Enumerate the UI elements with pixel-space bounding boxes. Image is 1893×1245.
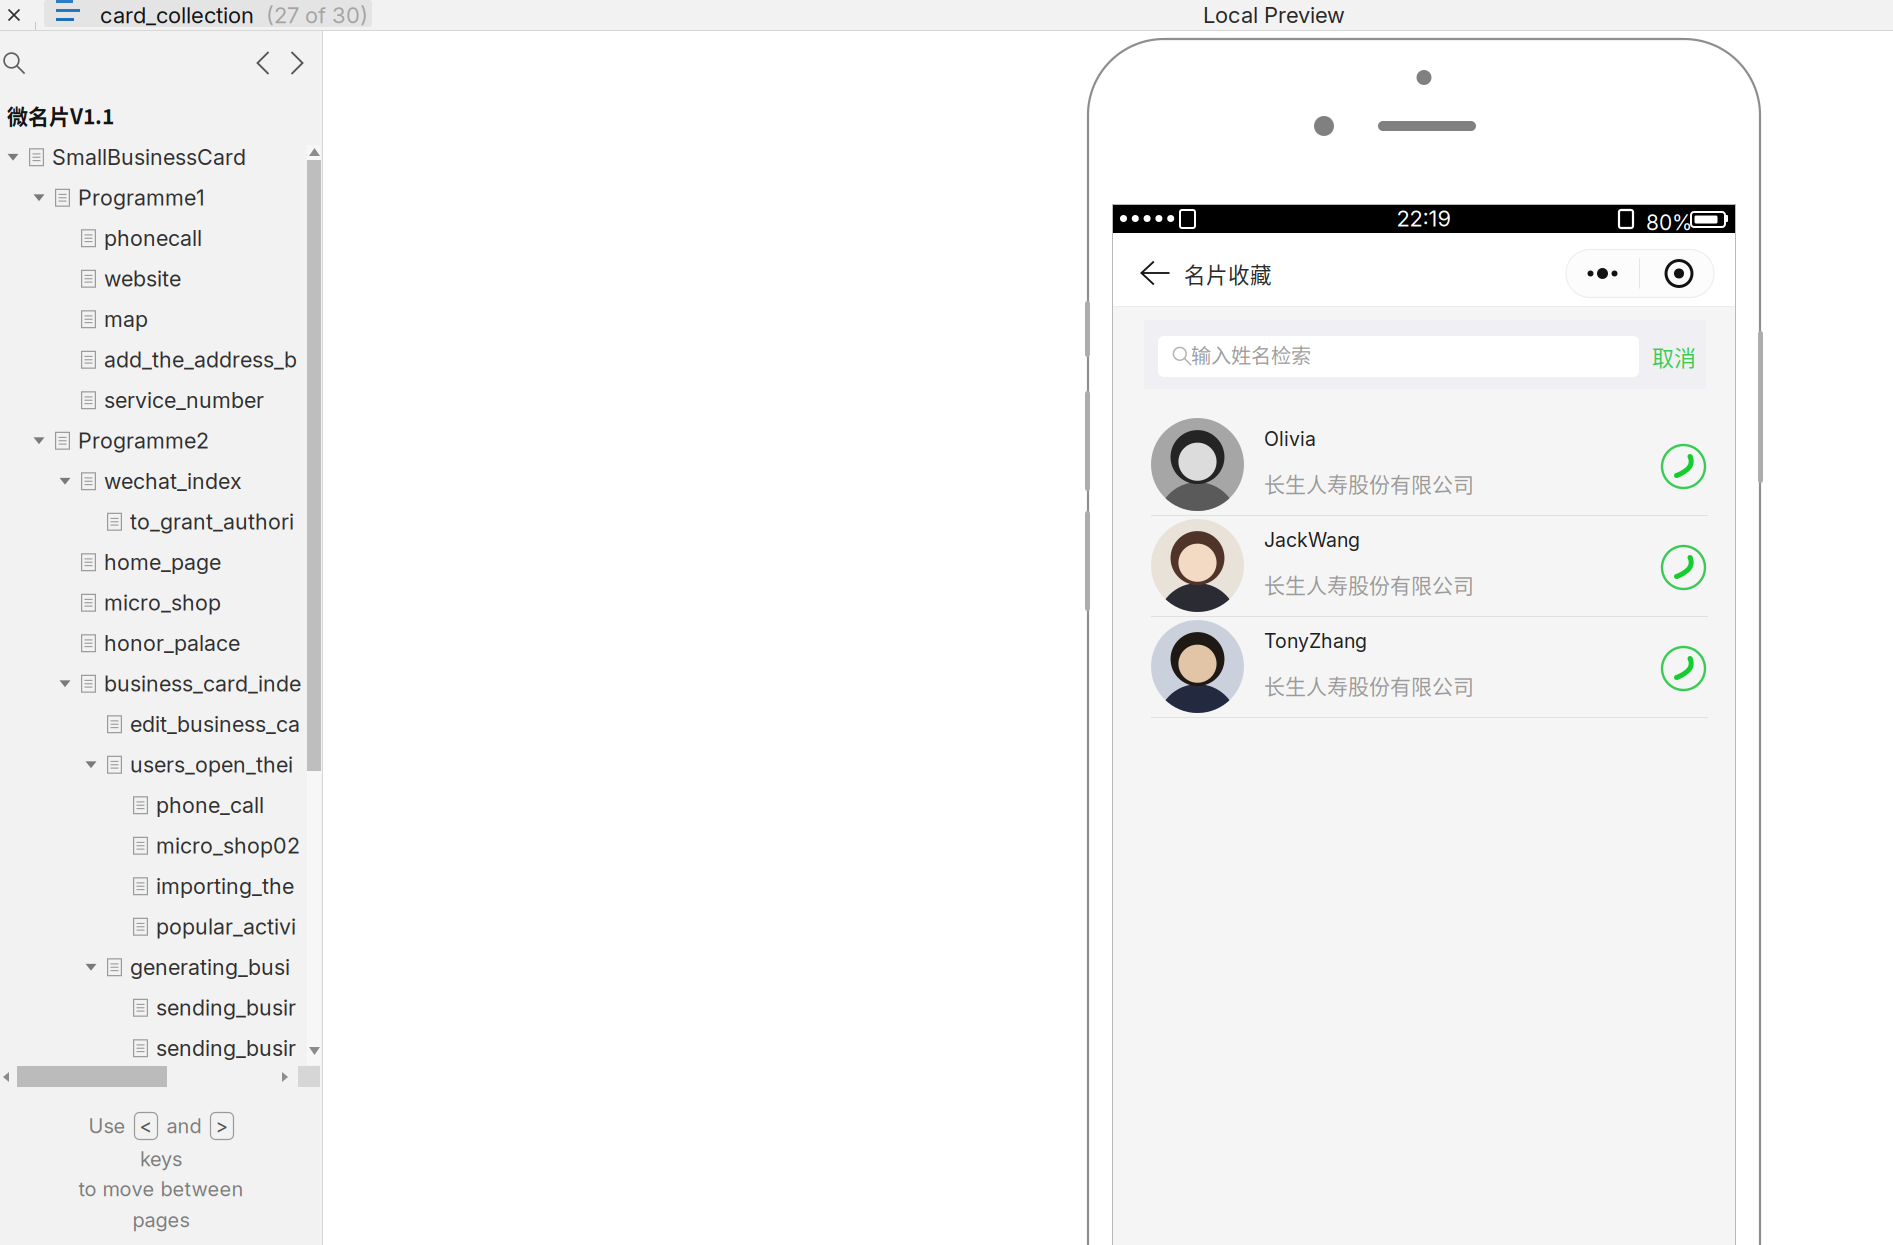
staticText: Programme1 [78, 185, 205, 211]
staticText: importing_the [156, 873, 294, 899]
button[interactable]: edit_business_ca [0, 704, 322, 744]
staticText: home_page [104, 549, 221, 575]
staticText: Local Preview [1203, 2, 1345, 28]
button[interactable]: card_collection [44, 0, 372, 27]
staticText: micro_shop02 [156, 833, 300, 859]
button[interactable]: Close mini program [1642, 249, 1716, 297]
staticText: SmallBusinessCard [52, 144, 246, 170]
button[interactable]: importing_the [0, 866, 322, 906]
staticText: < [139, 1114, 152, 1137]
staticText: service_number [104, 387, 264, 413]
button[interactable]: home_page [0, 542, 322, 582]
button[interactable]: Programme2 [0, 420, 322, 461]
staticText: to move between [78, 1177, 243, 1201]
button[interactable]: phone_call [0, 785, 322, 825]
staticText: micro_shop [104, 590, 221, 616]
button[interactable]: Close [0, 0, 28, 30]
button[interactable]: service_number [0, 380, 322, 420]
staticText: business_card_inde [104, 671, 301, 697]
button[interactable]: sending_busir [0, 987, 322, 1028]
button[interactable]: wechat_index [0, 461, 322, 501]
button[interactable]: users_open_thei [0, 744, 322, 785]
button[interactable]: website [0, 258, 322, 299]
staticText: Use [88, 1114, 125, 1138]
staticText: edit_business_ca [130, 711, 300, 737]
button[interactable]: Programme1 [0, 177, 322, 218]
staticText: popular_activi [156, 914, 296, 940]
button[interactable]: micro_shop [0, 582, 322, 623]
button[interactable]: JackWang [1112, 516, 1736, 617]
button[interactable]: micro_shop02 [0, 825, 322, 866]
staticText: and [166, 1114, 201, 1138]
staticText: add_the_address_b [104, 347, 297, 373]
staticText: users_open_thei [130, 752, 293, 778]
button[interactable]: Search [0, 47, 28, 79]
staticText: phone_call [156, 792, 264, 818]
staticText: website [104, 266, 181, 292]
button[interactable]: SmallBusinessCard [0, 137, 322, 177]
button[interactable]: generating_busi [0, 947, 322, 987]
button[interactable]: Olivia [1112, 415, 1736, 516]
staticText: > [215, 1114, 228, 1137]
button[interactable]: Previous page [248, 47, 278, 79]
staticText: to_grant_authori [130, 509, 294, 535]
button[interactable]: TonyZhang [1112, 617, 1736, 718]
button[interactable]: honor_palace [0, 623, 322, 663]
staticText: 取消 [1652, 341, 1696, 372]
staticText: phonecall [104, 225, 202, 251]
staticText: (27 of 30) [266, 2, 368, 29]
button[interactable]: 输入姓名检索 [1158, 336, 1639, 377]
staticText: wechat_index [104, 468, 242, 494]
staticText: 长生人寿股份有限公司 [1264, 670, 1474, 700]
button[interactable]: Next page [282, 47, 312, 79]
staticText: 长生人寿股份有限公司 [1264, 468, 1474, 498]
staticText: Olivia [1264, 427, 1316, 451]
staticText: Programme2 [78, 428, 209, 454]
button[interactable]: map [0, 299, 322, 339]
staticText: 微名片V1.1 [7, 100, 114, 130]
button[interactable]: More [1566, 249, 1639, 297]
staticText: 输入姓名检索 [1191, 340, 1311, 369]
button[interactable]: popular_activi [0, 906, 322, 947]
staticText: 长生人寿股份有限公司 [1264, 569, 1474, 599]
staticText: pages [132, 1208, 189, 1232]
staticText: honor_palace [104, 630, 240, 656]
staticText: 80% [1646, 210, 1692, 235]
staticText: generating_busi [130, 954, 290, 980]
staticText: sending_busir [156, 1035, 296, 1061]
button[interactable]: sending_busir [0, 1028, 322, 1068]
staticText: 22:19 [1396, 205, 1451, 232]
staticText: keys [140, 1147, 182, 1171]
button[interactable]: business_card_inde [0, 663, 322, 704]
button[interactable]: to_grant_authori [0, 501, 322, 542]
staticText: JackWang [1264, 528, 1360, 552]
staticText: TonyZhang [1264, 629, 1367, 653]
staticText: map [104, 306, 148, 332]
button[interactable]: 取消 [1646, 336, 1702, 377]
staticText: 名片收藏 [1184, 258, 1272, 289]
button[interactable]: add_the_address_b [0, 339, 322, 380]
button[interactable]: Back [1137, 249, 1173, 297]
staticText: card_collection [100, 2, 254, 29]
button[interactable]: phonecall [0, 218, 322, 258]
staticText: sending_busir [156, 995, 296, 1021]
